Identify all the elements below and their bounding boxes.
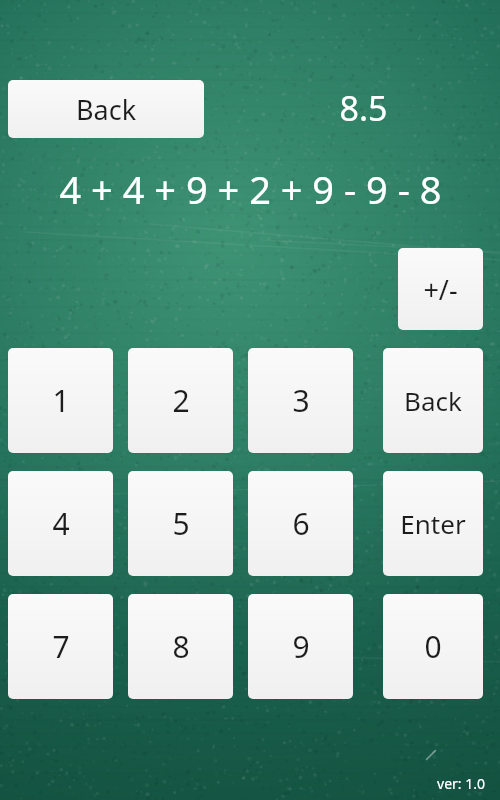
staticText: 0 (424, 626, 442, 667)
button[interactable]: 6 (248, 471, 353, 576)
button[interactable]: Back (8, 80, 204, 138)
staticText: 5 (172, 503, 190, 544)
button[interactable]: Enter (383, 471, 483, 576)
button[interactable]: Back (383, 348, 483, 453)
staticText: 4 (52, 503, 70, 544)
staticText: 7 (52, 626, 70, 667)
staticText: 1 (52, 380, 70, 421)
button[interactable]: 3 (248, 348, 353, 453)
button[interactable]: 1 (8, 348, 113, 453)
staticText: 6 (292, 503, 310, 544)
staticText: 8.5 (339, 85, 388, 131)
button[interactable]: 8 (128, 594, 233, 699)
button[interactable]: 0 (383, 594, 483, 699)
staticText: Enter (400, 506, 466, 541)
button[interactable]: 7 (8, 594, 113, 699)
button[interactable]: 2 (128, 348, 233, 453)
staticText: Back (404, 383, 462, 418)
staticText: ver: 1.0 (437, 774, 485, 793)
staticText: 4 + 4 + 9 + 2 + 9 - 9 - 8 (59, 163, 442, 215)
staticText: Back (76, 91, 137, 128)
button[interactable]: 4 (8, 471, 113, 576)
staticText: 8 (172, 626, 190, 667)
staticText: +/- (423, 271, 458, 308)
button[interactable]: 5 (128, 471, 233, 576)
staticText: 3 (292, 380, 310, 421)
staticText: 9 (292, 626, 310, 667)
button[interactable]: 9 (248, 594, 353, 699)
button[interactable]: +/- (398, 248, 483, 330)
staticText: 2 (172, 380, 190, 421)
